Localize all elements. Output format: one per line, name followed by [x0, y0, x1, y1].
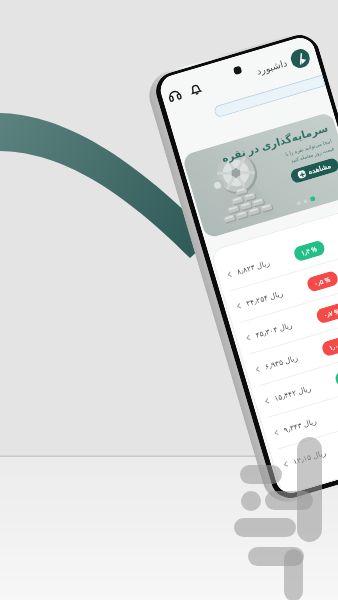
staticText: قیمت روز معامله کنید — [290, 145, 335, 165]
staticText: ۴۵٫۳۰۴ ریال — [254, 319, 293, 340]
staticText: ۳۴٫۲۵۴ ریال — [245, 288, 284, 308]
staticText: اینجا می‌توانید نقره را با — [285, 138, 333, 158]
staticText: ۱۵٫۴۴۲ ریال — [273, 383, 312, 403]
staticText: ۹٫۳۴۳ ریال — [282, 416, 318, 435]
staticText: ۱٫۰ % — [328, 339, 338, 353]
button[interactable]: سرمایه‌گذاری در نقره — [182, 111, 338, 239]
staticText: داشبورد — [255, 57, 289, 77]
staticText: ۶٫۹۳۵ ریال — [263, 352, 299, 371]
staticText: ۸٫۸۲۳ ریال — [235, 257, 271, 277]
staticText: ۱٫۴ % — [300, 244, 319, 258]
staticText: سرمایه‌گذاری در نقره — [219, 120, 329, 165]
staticText: مشاهده — [307, 162, 333, 176]
staticText: ۰٫۷ % — [322, 306, 338, 320]
button[interactable]: ۱۵٫۴۴۲ ریال — [259, 346, 338, 417]
staticText: ۱۲٫۱۵ ریال — [292, 447, 327, 466]
button[interactable]: Support — [164, 85, 185, 106]
button[interactable]: مشاهده — [297, 162, 333, 179]
button[interactable]: ۳۴٫۲۵۴ ریال — [231, 251, 338, 322]
button[interactable]: Search — [213, 74, 326, 118]
button[interactable]: Notifications — [185, 79, 206, 100]
staticText: ۰٫۵ % — [313, 275, 332, 288]
button[interactable]: ۸٫۸۲۳ ریال — [222, 220, 338, 290]
button[interactable]: ۱۲٫۱۵ ریال — [278, 409, 338, 480]
button[interactable]: ۴۵٫۳۰۴ ریال — [240, 283, 338, 353]
button[interactable]: ۶٫۹۳۵ ریال — [250, 314, 338, 385]
button[interactable]: ۹٫۳۴۳ ریال — [269, 378, 338, 448]
